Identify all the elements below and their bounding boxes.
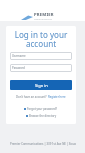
staticText: Log in to your account: [10, 29, 72, 49]
button[interactable]: Browse the directory: [10, 114, 72, 118]
staticText: Premier Communications | 339 1st Ave NE …: [10, 142, 76, 146]
staticText: Browse the directory: [29, 114, 57, 118]
staticText: Username: [12, 54, 26, 58]
staticText: PREMIER: [34, 12, 54, 18]
staticText: communications: [34, 18, 53, 20]
staticText: Don't have an account?: [16, 95, 48, 99]
staticText: Forgot your password?: [27, 107, 58, 111]
button[interactable]: Register here: [48, 95, 66, 99]
staticText: Sign in: [35, 83, 48, 88]
button[interactable]: Password: [10, 64, 72, 72]
button[interactable]: Username: [10, 52, 72, 60]
button[interactable]: Forgot your password?: [10, 107, 72, 111]
staticText: Password: [12, 66, 25, 70]
button[interactable]: Sign in: [10, 80, 72, 90]
